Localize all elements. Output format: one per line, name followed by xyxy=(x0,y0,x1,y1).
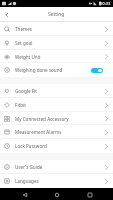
button[interactable]: Back xyxy=(0,8,13,21)
staticText: Weight Unit xyxy=(15,54,41,60)
staticText: Google Fit xyxy=(15,88,37,94)
button[interactable]: Themes xyxy=(0,22,113,36)
staticText: My Connected Accessory xyxy=(15,116,69,122)
button[interactable]: Set goal xyxy=(0,36,113,50)
staticText: Languages xyxy=(15,178,39,184)
staticText: Themes xyxy=(15,26,33,32)
staticText: Setting xyxy=(48,11,65,18)
button[interactable]: My Connected Accessory xyxy=(0,112,113,125)
button[interactable]: Weighing done sound xyxy=(0,63,113,77)
staticText: Lock Password xyxy=(15,143,47,149)
button[interactable]: Back xyxy=(19,189,30,200)
button[interactable]: Lock Password xyxy=(0,139,113,153)
button[interactable]: Recents xyxy=(84,189,95,200)
staticText: User's Guide xyxy=(15,164,43,170)
staticText: Set goal xyxy=(15,40,33,46)
staticText: Fitbit xyxy=(15,102,26,108)
button[interactable]: Fitbit xyxy=(0,98,113,112)
staticText: Weighing done sound xyxy=(15,67,63,73)
staticText: 10:33 xyxy=(100,1,111,7)
button[interactable]: Google Fit xyxy=(0,84,113,98)
button[interactable]: Languages xyxy=(0,174,113,188)
staticText: Measurement Alarms xyxy=(15,129,62,135)
button[interactable]: User's Guide xyxy=(0,160,113,174)
button[interactable]: Measurement Alarms xyxy=(0,125,113,139)
button[interactable]: Weight Unit xyxy=(0,50,113,63)
button[interactable]: Home xyxy=(51,189,62,200)
